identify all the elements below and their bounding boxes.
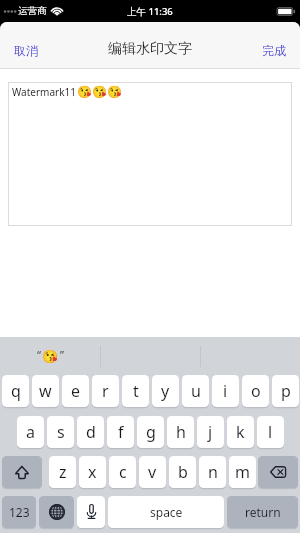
button[interactable]: Watermark11: [8, 82, 292, 226]
button[interactable]: q: [2, 375, 29, 407]
staticText: 123: [9, 504, 30, 520]
staticText: n: [208, 461, 218, 483]
staticText: 😘: [42, 349, 59, 364]
staticText: 😘😘😘: [77, 85, 122, 99]
button[interactable]: k: [227, 416, 254, 448]
staticText: d: [86, 421, 96, 443]
button[interactable]: w: [32, 375, 59, 407]
button[interactable]: return: [227, 496, 298, 528]
staticText: h: [176, 421, 186, 443]
button[interactable]: c: [109, 456, 136, 488]
staticText: space: [150, 504, 183, 520]
button[interactable]: Switch keyboard: [39, 496, 74, 528]
button[interactable]: d: [77, 416, 104, 448]
staticText: 编辑水印文字: [108, 40, 192, 58]
staticText: r: [102, 380, 109, 402]
button[interactable]: v: [139, 456, 166, 488]
button[interactable]: p: [272, 375, 299, 407]
button[interactable]: f: [107, 416, 134, 448]
staticText: 完成: [262, 43, 286, 58]
staticText: x: [88, 461, 97, 483]
staticText: m: [235, 461, 250, 483]
button[interactable]: l: [257, 416, 284, 448]
button[interactable]: “: [0, 337, 100, 375]
staticText: p: [281, 380, 291, 402]
button[interactable]: Backspace: [258, 456, 298, 488]
staticText: f: [118, 421, 124, 443]
button[interactable]: j: [197, 416, 224, 448]
button[interactable]: t: [122, 375, 149, 407]
staticText: c: [119, 461, 127, 483]
button[interactable]: y: [152, 375, 179, 407]
staticText: w: [39, 380, 52, 402]
button[interactable]: z: [49, 456, 76, 488]
staticText: q: [11, 380, 21, 402]
staticText: return: [245, 504, 281, 520]
button[interactable]: a: [17, 416, 44, 448]
staticText: Watermark11: [12, 85, 76, 99]
button[interactable]: 取消: [0, 30, 48, 61]
staticText: i: [223, 380, 228, 402]
button[interactable]: e: [62, 375, 89, 407]
button[interactable]: space: [108, 496, 224, 528]
staticText: g: [146, 421, 156, 443]
staticText: o: [251, 380, 261, 402]
staticText: b: [178, 461, 188, 483]
staticText: k: [236, 421, 245, 443]
staticText: y: [161, 380, 170, 402]
button[interactable]: Shift: [2, 456, 42, 488]
staticText: u: [191, 380, 201, 402]
staticText: z: [59, 461, 67, 483]
button[interactable]: 123: [2, 496, 36, 528]
button[interactable]: m: [229, 456, 256, 488]
button[interactable]: x: [79, 456, 106, 488]
staticText: 上午 11:36: [127, 5, 173, 18]
staticText: “: [37, 347, 41, 362]
button[interactable]: b: [169, 456, 196, 488]
staticText: ”: [60, 347, 64, 362]
staticText: s: [57, 421, 65, 443]
staticText: j: [208, 421, 213, 443]
button[interactable]: o: [242, 375, 269, 407]
button[interactable]: g: [137, 416, 164, 448]
staticText: l: [268, 421, 273, 443]
staticText: t: [133, 380, 139, 402]
button[interactable]: r: [92, 375, 119, 407]
staticText: v: [148, 461, 157, 483]
button[interactable]: s: [47, 416, 74, 448]
button[interactable]: n: [199, 456, 226, 488]
staticText: e: [71, 380, 81, 402]
button[interactable]: i: [212, 375, 239, 407]
button[interactable]: 完成: [252, 30, 300, 61]
staticText: 取消: [14, 43, 38, 58]
button[interactable]: Dictation: [77, 496, 105, 528]
staticText: 运营商: [18, 5, 47, 17]
staticText: a: [26, 421, 35, 443]
button[interactable]: u: [182, 375, 209, 407]
button[interactable]: h: [167, 416, 194, 448]
